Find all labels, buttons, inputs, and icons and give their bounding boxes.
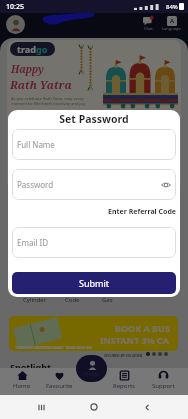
button[interactable]: Email ID xyxy=(12,227,176,258)
staticText: Set Password xyxy=(12,112,176,126)
staticText: Chat xyxy=(144,26,153,31)
staticText: Full Name xyxy=(17,139,55,150)
staticText: Submit xyxy=(79,277,110,289)
staticText: "GRAMMER MINISTRIES AWAIT" BOOK YOUR BUS xyxy=(15,346,93,350)
staticText: Language xyxy=(162,26,181,31)
staticText: Cylinder xyxy=(23,296,47,304)
button[interactable]: Account xyxy=(6,15,25,34)
button[interactable]: Back xyxy=(135,395,159,419)
button[interactable]: Home xyxy=(3,370,41,394)
button[interactable]: Gas xyxy=(87,296,127,304)
staticText: trad xyxy=(17,43,36,55)
button[interactable]: trad xyxy=(7,40,181,190)
staticText: SECURED BY HOUDINI xyxy=(104,353,143,358)
button[interactable]: Password xyxy=(12,169,176,200)
button[interactable]: Recents xyxy=(29,395,53,419)
staticText: Rath Yatra xyxy=(10,77,72,92)
button[interactable]: Code xyxy=(52,296,92,304)
button[interactable]: Profile xyxy=(76,355,107,382)
button[interactable]: Full Name xyxy=(12,129,176,160)
button[interactable]: Language xyxy=(162,16,181,31)
staticText: Profile xyxy=(84,371,100,378)
staticText: As you celebrate Rath Yatra, may every m… xyxy=(11,96,86,106)
staticText: Support xyxy=(152,382,175,390)
staticText: Email ID xyxy=(17,237,49,248)
staticText: Favourite xyxy=(46,382,73,390)
staticText: go xyxy=(36,43,48,55)
staticText: Code xyxy=(65,296,80,304)
staticText: Password xyxy=(17,179,54,190)
staticText: 10:25 xyxy=(6,2,24,12)
button[interactable]: Reports xyxy=(105,370,143,394)
staticText: Spotlight xyxy=(10,361,51,373)
button[interactable]: Support xyxy=(144,370,182,394)
button[interactable]: Favourite xyxy=(40,370,78,394)
staticText: Reports xyxy=(113,382,135,390)
staticText: Happy xyxy=(11,62,44,76)
button[interactable]: Cylinder xyxy=(15,296,55,304)
button[interactable]: Submit xyxy=(12,272,176,294)
staticText: Home xyxy=(13,382,31,390)
staticText: A xyxy=(170,17,175,25)
button[interactable]: Enter Referral Code xyxy=(12,207,176,217)
staticText: INSTANT 3% CA xyxy=(100,334,170,346)
button[interactable]: Show password xyxy=(161,180,171,190)
button[interactable]: BOOK A BUS xyxy=(9,316,178,351)
staticText: Gas xyxy=(102,296,113,304)
button[interactable]: Home xyxy=(82,395,106,419)
button[interactable]: Chat xyxy=(143,16,153,31)
staticText: 84% xyxy=(166,3,178,11)
staticText: BOOK A BUS xyxy=(115,322,170,334)
